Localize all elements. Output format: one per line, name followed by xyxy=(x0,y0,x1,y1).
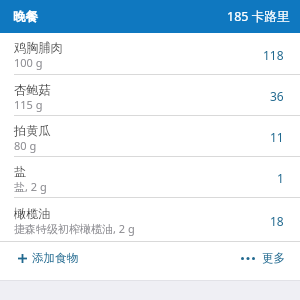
staticText: 1 xyxy=(277,170,284,186)
button[interactable]: 杏鲍菇 xyxy=(0,75,300,115)
staticText: 盐 xyxy=(14,164,27,179)
staticText: 橄榄油 xyxy=(14,206,51,221)
staticText: 鸡胸脯肉 xyxy=(14,40,63,55)
other: 更多 xyxy=(241,257,255,260)
staticText: 盐, 2 g xyxy=(14,179,47,194)
button[interactable]: 橄榄油 xyxy=(0,198,300,241)
button[interactable]: 盐 xyxy=(0,157,300,197)
button[interactable]: 更多 xyxy=(231,248,300,275)
staticText: 80 g xyxy=(14,138,37,153)
staticText: 185 卡路里 xyxy=(227,8,290,25)
staticText: 杏鲍菇 xyxy=(14,82,51,97)
staticText: 更多 xyxy=(262,251,286,266)
button[interactable]: 拍黄瓜 xyxy=(0,116,300,156)
button[interactable]: 添加食物 xyxy=(0,248,89,275)
staticText: 晚餐 xyxy=(13,9,38,25)
staticText: 115 g xyxy=(14,97,43,112)
staticText: 100 g xyxy=(14,55,43,70)
staticText: 18 xyxy=(270,213,284,229)
staticText: 36 xyxy=(270,88,284,104)
button[interactable]: 鸡胸脯肉 xyxy=(0,33,300,74)
staticText: 添加食物 xyxy=(32,251,79,266)
staticText: 118 xyxy=(263,47,284,63)
staticText: 拍黄瓜 xyxy=(14,123,51,138)
staticText: 11 xyxy=(270,129,284,145)
staticText: 捷森特级初榨橄榄油, 2 g xyxy=(14,221,135,236)
